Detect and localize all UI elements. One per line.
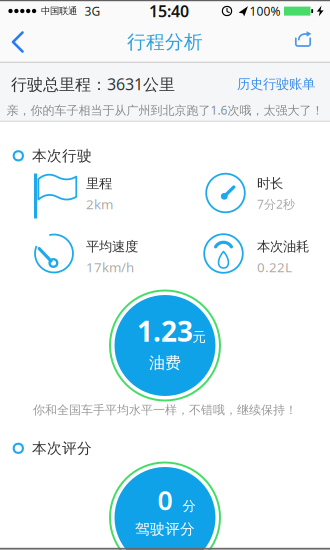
staticText: 本次油耗 [257,238,309,255]
staticText: 平均速度 [86,238,138,255]
staticText: 1.23 [137,312,193,350]
staticText: 里程 [86,175,112,192]
staticText: 3G [84,3,100,19]
staticText: 2km [86,195,113,213]
staticText: 油费 [149,353,181,373]
staticText: 0 [157,482,172,518]
staticText: 15:40 [149,0,189,22]
staticText: 行程分析 [127,30,203,53]
staticText: 17km/h [86,258,134,276]
button[interactable]: Back [0,22,34,62]
staticText: 元 [192,329,205,345]
staticText: 中国联通 [41,5,77,17]
staticText: 分 [182,498,195,514]
button[interactable]: 历史行驶账单 [237,76,315,92]
staticText: 亲，你的车子相当于从广州到北京跑了1.6次哦，太强大了！ [6,102,323,118]
staticText: 0.22L [257,258,292,276]
staticText: 行驶总里程：3631公里 [11,73,175,95]
staticText: 你和全国车手平均水平一样，不错哦，继续保持！ [33,403,297,417]
button[interactable]: Share [285,21,321,61]
staticText: 驾驶评分 [135,520,195,538]
staticText: 本次评分 [32,439,92,457]
staticText: 本次行驶 [32,147,92,165]
staticText: 7分2秒 [257,196,295,212]
staticText: 时长 [257,175,283,192]
staticText: 100% [249,3,280,19]
staticText: 历史行驶账单 [237,76,315,92]
